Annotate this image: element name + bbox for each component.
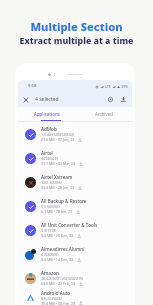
button[interactable]: Almeadirres Alumni — [18, 242, 132, 266]
button[interactable]: Close selection — [21, 95, 31, 105]
staticText: AdMob — [41, 126, 57, 132]
button[interactable]: All Unit Converter & Tools — [18, 218, 132, 242]
button[interactable]: Android Auto — [18, 290, 132, 305]
button[interactable]: Applications — [18, 107, 75, 121]
staticText: All Unit Converter & Tools — [41, 222, 98, 228]
staticText: All Backup & Restore — [41, 198, 87, 204]
button[interactable]: All Backup & Restore — [18, 194, 132, 218]
staticText: 21.6 MB • 07 Jun, 23 — [41, 137, 75, 142]
staticText: 6.4 MB • 20 Dec, 22 — [41, 233, 74, 238]
staticText: Amazon — [41, 270, 59, 276]
staticText: 39.4 MB • 08 Feb, 23 — [41, 301, 76, 305]
staticText: 39% — [121, 84, 128, 89]
staticText: 4.3(40000) — [41, 252, 59, 257]
button[interactable]: Archived — [75, 107, 132, 121]
button[interactable]: Select all — [105, 94, 116, 105]
staticText: 5.4 MB • 14 Dec, 22 — [41, 257, 74, 262]
button[interactable]: Airtel Xstream — [18, 170, 132, 194]
staticText: 1.0.489128652(834) — [41, 132, 74, 137]
staticText: 31.1 MB • 03 Mar, 23 — [41, 161, 76, 166]
staticText: Extract multiple at a time — [0, 35, 153, 47]
button[interactable]: Airtel — [18, 146, 132, 170]
staticText: 9:58 — [28, 83, 37, 89]
staticText: 4 selected — [35, 96, 59, 103]
staticText: 5.5.54(550) — [41, 204, 60, 209]
staticText: Airtel Xstream — [41, 174, 73, 180]
staticText: 8.6.2335(33) — [41, 296, 62, 301]
staticText: 63.0 MB • 22 Feb, 23 — [41, 281, 76, 286]
staticText: Multiple Section — [0, 19, 153, 34]
staticText: 33.4 MB • 28 Jan, 23 — [41, 185, 75, 190]
staticText: 26.4.2.300(1262)(242215) — [41, 276, 84, 281]
button[interactable]: AdMob — [18, 122, 132, 146]
staticText: Airtel — [41, 150, 53, 156]
button[interactable]: Amazon — [18, 266, 132, 290]
staticText: Almeadirres Alumni — [41, 246, 85, 252]
staticText: 4414(547) — [41, 156, 58, 161]
staticText: Archived — [95, 111, 113, 117]
staticText: Applications — [34, 111, 60, 117]
button[interactable]: Extract — [118, 94, 129, 105]
staticText: 6.1 MB • 28 Jan, 23 — [41, 209, 73, 214]
staticText: 1.63.1(2785) — [41, 180, 62, 185]
staticText: LTE — [105, 84, 111, 89]
staticText: 1.9(1378) — [41, 228, 57, 233]
staticText: Android Auto — [41, 290, 71, 296]
